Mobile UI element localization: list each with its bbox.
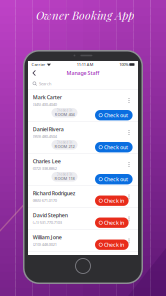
staticText: Owner Booking App	[36, 7, 134, 23]
button[interactable]: Check out	[95, 142, 133, 152]
staticText: Richard Rodriguez	[33, 190, 76, 197]
staticText: (072) 338-8862	[33, 166, 57, 171]
staticText: Check in	[104, 197, 124, 204]
staticText: Check out	[104, 176, 128, 183]
staticText: (345) 400-4040	[33, 102, 57, 107]
staticText: (+1) 531-770-7103	[33, 220, 62, 225]
button[interactable]: More options	[125, 192, 132, 201]
staticText: Daniel Rivera	[33, 126, 64, 133]
staticText: Charles Lee	[33, 158, 61, 165]
button[interactable]: Check out	[95, 174, 133, 184]
button[interactable]: More options	[125, 160, 132, 169]
staticText: David Stephen	[33, 212, 68, 219]
button[interactable]: Check in	[95, 195, 129, 206]
staticText: Checked In	[56, 141, 72, 144]
staticText: Check out	[104, 112, 128, 119]
staticText: (865) 671-0170	[33, 198, 57, 203]
staticText: ROOM 118	[54, 176, 74, 181]
staticText: Checked In	[56, 173, 72, 176]
staticText: Mark Carter	[33, 94, 62, 101]
staticText: (959) 480-4504	[33, 134, 57, 139]
button[interactable]: More options	[125, 128, 132, 137]
staticText: Check in	[104, 219, 124, 226]
button[interactable]: More options	[125, 214, 132, 223]
staticText: William Jone	[33, 234, 62, 241]
staticText: Check in	[104, 241, 124, 248]
staticText: Manage Staff	[66, 69, 99, 77]
staticText: (210) 448-0021	[33, 242, 57, 247]
staticText: 100%	[119, 62, 128, 67]
staticText: Checked In	[56, 109, 72, 112]
staticText: Check out	[104, 144, 128, 151]
button[interactable]: Check in	[95, 239, 129, 250]
staticText: ROOM 404	[54, 112, 74, 117]
button[interactable]: More options	[125, 96, 132, 105]
button[interactable]: Check in	[95, 217, 129, 228]
staticText: 11:11 AM	[77, 62, 94, 67]
staticText: ROOM 212	[54, 144, 74, 149]
staticText: Carrier	[31, 62, 45, 67]
button[interactable]: Check out	[95, 110, 133, 120]
button[interactable]: Back	[28, 68, 40, 78]
button[interactable]: More options	[125, 236, 132, 245]
staticText: Search	[39, 81, 51, 86]
